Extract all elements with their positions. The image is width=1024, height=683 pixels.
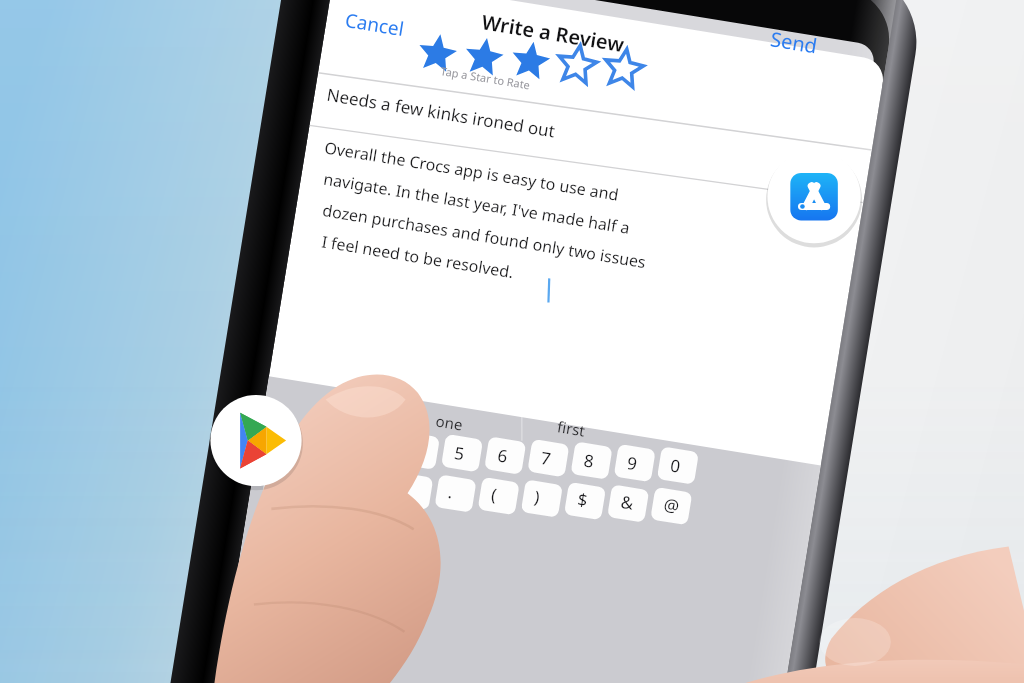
other: Write a Review screen [0,0,1024,683]
